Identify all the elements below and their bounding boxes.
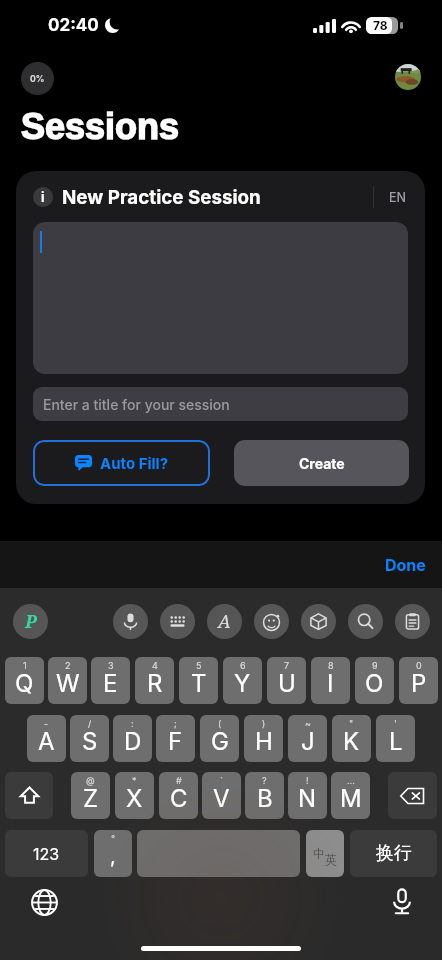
button[interactable]: 0% [21,62,54,95]
button[interactable] [33,222,408,374]
button[interactable]: " [332,715,371,762]
staticText: ? [262,775,267,786]
button[interactable]: 8 [311,657,350,704]
button[interactable]: Enter a title for your session [33,387,408,421]
staticText: V [213,784,230,813]
button[interactable]: 2 [48,657,87,704]
staticText: 1 [23,660,27,671]
button[interactable]: 5 [179,657,218,704]
staticText: 0 [416,660,422,671]
button[interactable]: Keyboard [160,604,195,639]
staticText: Sessions [21,106,180,146]
button[interactable]: 3D object [301,604,336,639]
button[interactable]: 3 [91,657,130,704]
staticText: T [191,669,207,698]
button[interactable]: ... [331,772,370,819]
button[interactable]: Keyboard app [13,604,48,639]
staticText: New Practice Session [62,186,261,208]
staticText: ` [220,775,223,786]
staticText: 123 [33,844,60,863]
staticText: ! [306,775,309,786]
button[interactable]: ° [94,830,132,877]
staticText: I [327,669,334,698]
staticText: A [218,609,231,634]
staticText: " [349,718,354,729]
staticText: ... [347,775,355,786]
button[interactable]: Backspace [388,772,437,819]
staticText: / [88,718,92,729]
staticText: # [176,775,182,786]
staticText: O [365,669,384,698]
staticText: 0% [30,74,45,84]
staticText: 3 [108,660,114,671]
staticText: S [82,727,98,756]
button[interactable]: ~ [288,715,327,762]
button[interactable]: Auto Fill? [33,440,210,486]
button[interactable]: ) [244,715,283,762]
staticText: U [278,669,296,698]
staticText: K [343,727,360,756]
staticText: G [211,727,229,756]
button[interactable]: Switch Chinese English [306,830,344,877]
staticText: 5 [196,660,202,671]
button[interactable]: 0 [399,657,438,704]
button[interactable]: 123 [5,830,88,877]
button[interactable]: EN [387,190,408,205]
button[interactable]: @ [71,772,110,819]
button[interactable]: Change language [31,889,58,916]
button[interactable]: : [113,715,152,762]
staticText: 2 [65,660,71,671]
button[interactable]: Create [234,440,409,486]
button[interactable]: ? [245,772,284,819]
button[interactable]: 1 [5,657,44,704]
staticText: 9 [372,660,378,671]
staticText: i [41,189,45,205]
staticText: ° [111,833,116,844]
button[interactable]: Profile [395,64,421,90]
button[interactable]: - [27,715,66,762]
button[interactable]: Stickers [254,604,289,639]
button[interactable]: Text formatting [207,604,242,639]
button[interactable]: 6 [223,657,262,704]
staticText: R [147,669,163,698]
button[interactable]: 9 [355,657,394,704]
staticText: W [56,669,80,698]
button[interactable]: / [70,715,109,762]
staticText: ~ [305,718,311,729]
staticText: A [38,727,55,756]
button[interactable]: # [159,772,198,819]
button[interactable]: ( [200,715,239,762]
staticText: P [25,609,37,634]
button[interactable]: 换行 [350,830,437,877]
staticText: 78 [373,18,388,33]
button[interactable]: ; [156,715,195,762]
button[interactable]: Info [33,187,53,207]
staticText: B [257,784,273,813]
staticText: - [44,718,49,729]
button[interactable]: 7 [267,657,306,704]
button[interactable]: ' [376,715,415,762]
staticText: Q [15,669,34,698]
staticText: L [389,727,403,756]
button[interactable]: ! [288,772,327,819]
button[interactable]: Dictation [387,888,416,917]
button[interactable]: Done [385,555,426,574]
staticText: Auto Fill? [100,454,169,472]
button[interactable]: Shift [5,772,53,819]
button[interactable]: ` [202,772,241,819]
staticText: D [124,727,142,756]
button[interactable]: Clipboard [395,604,430,639]
staticText: M [340,784,362,813]
button[interactable]: * [115,772,154,819]
staticText: * [132,775,137,786]
staticText: ' [394,718,397,729]
staticText: 4 [152,660,158,671]
button[interactable]: Search [348,604,383,639]
staticText: , [110,844,116,868]
staticText: Enter a title for your session [43,396,230,413]
staticText: J [301,727,315,756]
button[interactable]: Voice input [113,604,148,639]
button[interactable]: 4 [135,657,174,704]
staticText: ( [218,718,222,729]
button[interactable]: Space [137,830,300,877]
